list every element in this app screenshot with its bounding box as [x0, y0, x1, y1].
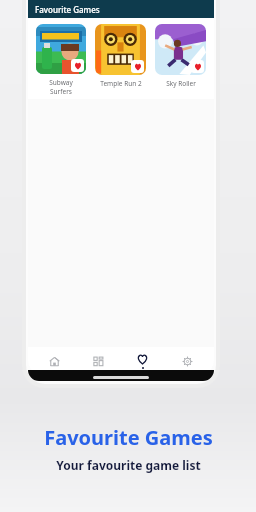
- staticText: Your favourite game list: [56, 457, 201, 473]
- staticText: Favourite Games: [44, 424, 213, 451]
- staticText: Temple Run 2: [100, 79, 142, 88]
- staticText: Sky Roller: [166, 79, 196, 88]
- button[interactable]: Temple Run 2: [95, 24, 146, 88]
- button[interactable]: Categories: [76, 347, 120, 375]
- button[interactable]: Favourites: [120, 347, 165, 375]
- button[interactable]: Sky Roller: [155, 24, 206, 88]
- button[interactable]: Home: [32, 347, 76, 375]
- button[interactable]: Subway Surfers: [36, 24, 86, 96]
- staticText: Subway Surfers: [49, 78, 73, 96]
- staticText: Favourite Games: [35, 4, 100, 15]
- button[interactable]: Settings: [165, 347, 210, 375]
